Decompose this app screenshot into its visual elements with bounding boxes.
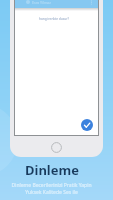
button[interactable]: Home: [51, 142, 62, 153]
staticText: Yuksek Kalitede Ses ile: [25, 189, 78, 196]
button[interactable]: Confirm: [81, 119, 93, 131]
button[interactable]: Esra Yilmaz: [15, 0, 98, 8]
staticText: Dinleme Becerilerinizi Pratik Yapin: [11, 182, 92, 189]
staticText: Dinleme: [25, 161, 79, 179]
other: More options: [89, 0, 94, 5]
staticText: hangi renkte dusur?: [39, 17, 69, 21]
staticText: Esra Yilmaz: [32, 0, 52, 5]
